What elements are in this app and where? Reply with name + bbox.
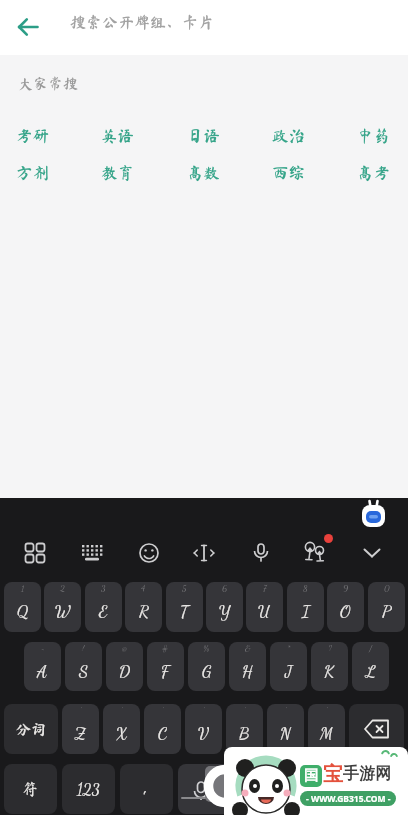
- staticText: M: [320, 723, 333, 743]
- staticText: P: [382, 601, 391, 621]
- button[interactable]: %: [188, 642, 225, 691]
- button[interactable]: &: [229, 642, 266, 691]
- button[interactable]: 中药: [357, 127, 390, 143]
- staticText: E: [99, 601, 108, 621]
- button[interactable]: 0: [368, 582, 405, 632]
- button[interactable]: 6: [206, 582, 243, 632]
- staticText: 5: [182, 583, 187, 594]
- button[interactable]: ': [144, 704, 181, 754]
- staticText: D: [119, 661, 131, 681]
- staticText: 手游网: [343, 764, 391, 784]
- staticText: ': [203, 705, 205, 716]
- staticText: J: [285, 661, 292, 681]
- staticText: 分词: [16, 722, 47, 737]
- button[interactable]: 日语: [187, 127, 220, 143]
- button[interactable]: [75, 536, 109, 570]
- button[interactable]: ~: [24, 642, 61, 691]
- staticText: 符: [22, 781, 39, 797]
- staticText: ~: [41, 643, 45, 654]
- staticText: B: [239, 723, 250, 743]
- button[interactable]: /: [352, 642, 389, 691]
- staticText: Q: [17, 601, 29, 621]
- staticText: ': [326, 705, 328, 716]
- button[interactable]: ': [185, 704, 222, 754]
- button[interactable]: ?: [311, 642, 348, 691]
- staticText: @: [122, 643, 128, 654]
- button[interactable]: [297, 534, 333, 570]
- staticText: Z: [75, 723, 86, 743]
- button[interactable]: ': [226, 704, 263, 754]
- staticText: 6: [222, 583, 228, 594]
- staticText: 国: [304, 767, 318, 785]
- staticText: 0: [384, 583, 390, 594]
- button[interactable]: 2: [44, 582, 81, 632]
- staticText: Y: [219, 601, 231, 621]
- button[interactable]: [355, 536, 389, 570]
- button[interactable]: 123: [62, 764, 115, 814]
- staticText: 123: [77, 780, 100, 799]
- button[interactable]: [132, 536, 166, 570]
- button[interactable]: ': [267, 704, 304, 754]
- button[interactable]: 高考: [357, 164, 390, 180]
- button[interactable]: [10, 9, 46, 45]
- staticText: S: [79, 661, 89, 681]
- button[interactable]: 分词: [4, 704, 58, 754]
- staticText: 4: [141, 583, 146, 594]
- staticText: #: [162, 643, 169, 654]
- staticText: 1: [21, 583, 25, 594]
- staticText: ': [162, 705, 164, 716]
- button[interactable]: @: [106, 642, 143, 691]
- button[interactable]: 8: [287, 582, 324, 632]
- button[interactable]: ': [308, 704, 345, 754]
- button[interactable]: 国: [224, 747, 408, 815]
- staticText: H: [242, 661, 253, 681]
- button[interactable]: [360, 499, 386, 527]
- button[interactable]: 9: [327, 582, 364, 632]
- button[interactable]: 教育: [101, 164, 134, 180]
- staticText: F: [161, 661, 170, 681]
- button[interactable]: 考研: [16, 127, 49, 143]
- button[interactable]: 方剂: [16, 164, 49, 180]
- button[interactable]: ': [62, 704, 99, 754]
- staticText: 9: [343, 583, 349, 594]
- staticText: C: [158, 723, 168, 743]
- button[interactable]: 西综: [272, 164, 305, 180]
- staticText: %: [203, 643, 210, 654]
- button[interactable]: 3: [85, 582, 122, 632]
- button[interactable]: ,: [120, 764, 173, 814]
- staticText: V: [198, 723, 209, 743]
- button[interactable]: *: [270, 642, 307, 691]
- staticText: 2: [60, 583, 66, 594]
- button[interactable]: ': [103, 704, 140, 754]
- staticText: T: [180, 601, 189, 621]
- staticText: K: [324, 661, 335, 681]
- staticText: L: [366, 661, 376, 681]
- button[interactable]: 7: [246, 582, 283, 632]
- button[interactable]: 搜索公开牌组、卡片: [70, 14, 215, 30]
- button[interactable]: 高数: [187, 164, 220, 180]
- button[interactable]: [349, 704, 404, 754]
- staticText: W: [55, 601, 71, 621]
- staticText: I: [302, 601, 310, 621]
- button[interactable]: [18, 536, 52, 570]
- staticText: *: [287, 643, 291, 654]
- staticText: R: [139, 601, 149, 621]
- button[interactable]: !: [65, 642, 102, 691]
- button[interactable]: 政治: [272, 127, 305, 143]
- button[interactable]: [178, 764, 290, 814]
- staticText: 宝: [323, 762, 343, 787]
- staticText: ': [285, 705, 287, 716]
- button[interactable]: 符: [4, 764, 57, 814]
- staticText: N: [280, 723, 291, 743]
- staticText: 大家常搜: [18, 76, 79, 91]
- button[interactable]: [244, 536, 278, 570]
- staticText: - WWW.GB315.COM -: [306, 793, 391, 805]
- button[interactable]: 4: [125, 582, 162, 632]
- staticText: 7: [263, 583, 267, 594]
- button[interactable]: 1: [4, 582, 41, 632]
- staticText: !: [82, 643, 85, 654]
- button[interactable]: #: [147, 642, 184, 691]
- button[interactable]: 英语: [101, 127, 134, 143]
- button[interactable]: 5: [166, 582, 203, 632]
- button[interactable]: [187, 536, 221, 570]
